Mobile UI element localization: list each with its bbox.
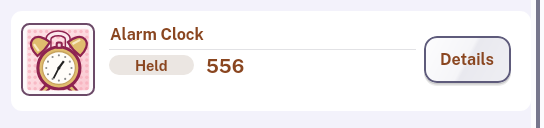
staticText: Held — [135, 57, 168, 74]
staticText: Details — [440, 50, 495, 69]
staticText: Alarm Clock — [110, 25, 204, 44]
button[interactable]: Alarm Clock app icon — [11, 11, 531, 111]
other: Alarm Clock app icon — [21, 23, 95, 96]
button[interactable]: Held — [109, 55, 194, 75]
staticText: 556 — [206, 55, 245, 77]
button[interactable]: Details — [424, 36, 511, 83]
